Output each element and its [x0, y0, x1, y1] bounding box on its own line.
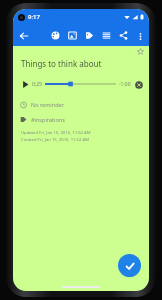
button[interactable]: Add label — [81, 27, 98, 44]
button[interactable]: Share — [115, 27, 132, 44]
button[interactable]: Delete recording — [133, 79, 144, 90]
button[interactable]: Pin note — [135, 46, 146, 57]
button[interactable]: Checklist — [98, 27, 115, 44]
button[interactable]: Save note — [118, 254, 141, 277]
staticText: 9:17 — [28, 13, 40, 21]
button[interactable]: Change color — [47, 27, 64, 44]
staticText: Things to think about — [21, 58, 102, 69]
staticText: Updated Fri, Jan 15, 2016, 11:52 AM — [21, 130, 91, 136]
button[interactable]: Back — [15, 27, 33, 45]
staticText: Created Fri, Jan 15, 2016, 11:52 AM — [21, 137, 89, 143]
staticText: No reminder — [31, 101, 64, 108]
button[interactable]: Add image — [64, 27, 81, 44]
button[interactable]: Seek — [45, 78, 116, 90]
staticText: 0:25 — [32, 81, 42, 88]
staticText: -1:00 — [119, 81, 131, 88]
staticText: #inspirations — [31, 116, 65, 123]
button[interactable]: More options — [132, 28, 148, 44]
button[interactable]: No reminder — [13, 98, 149, 110]
button[interactable]: #inspirations — [13, 113, 149, 125]
button[interactable]: Play recording — [19, 78, 31, 90]
